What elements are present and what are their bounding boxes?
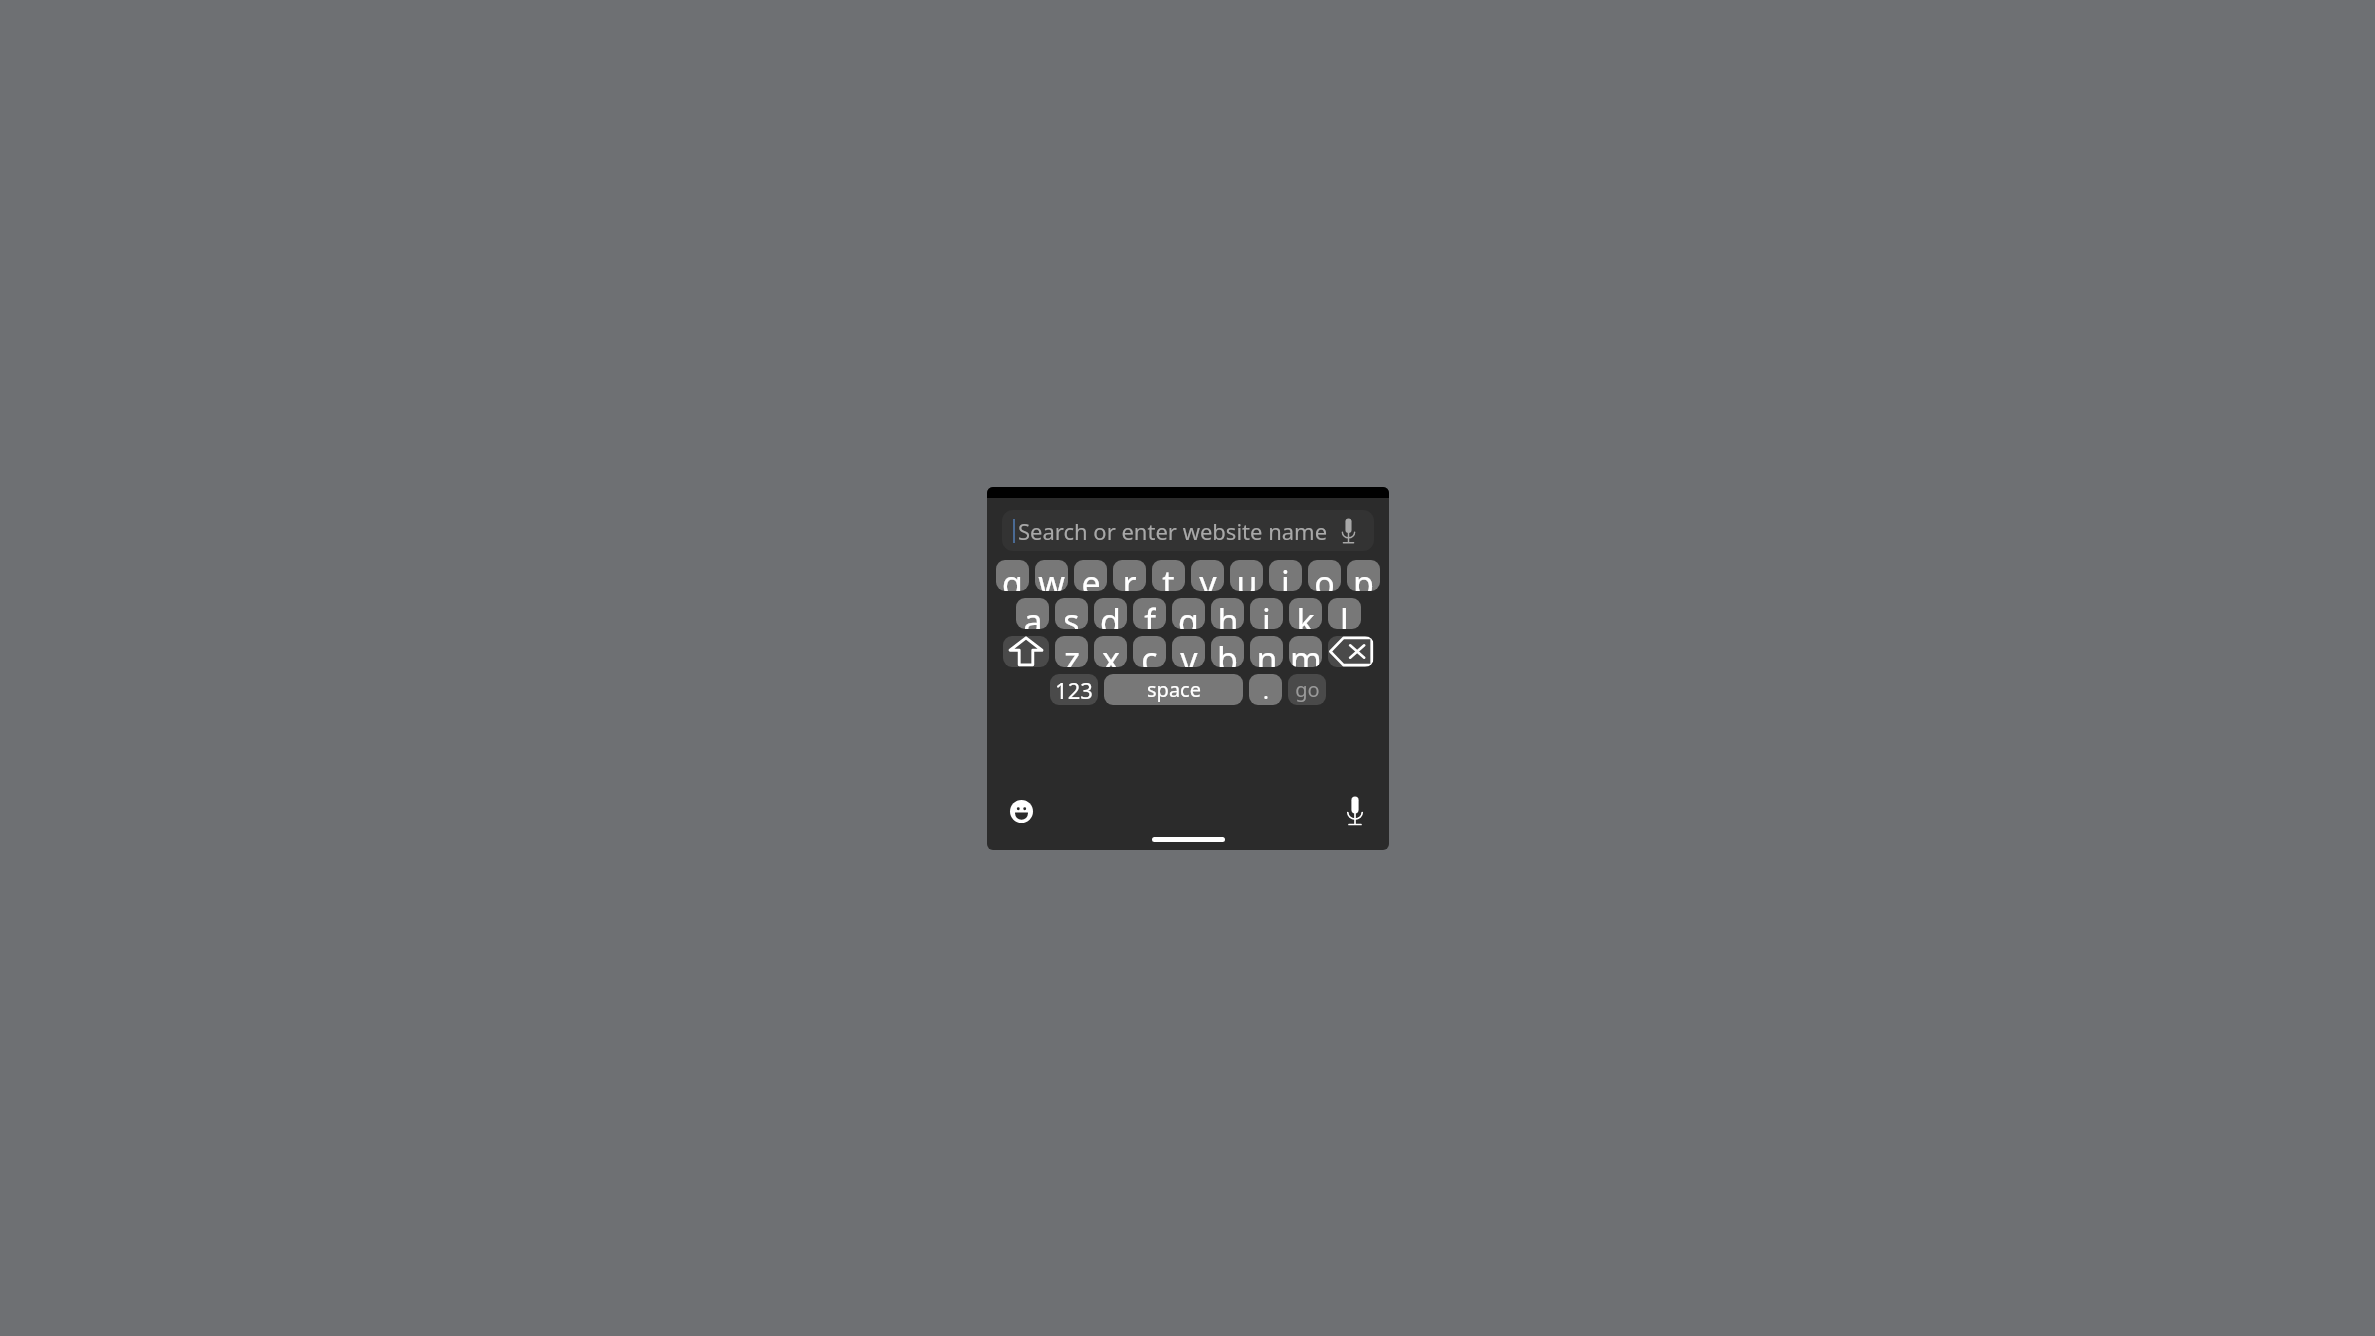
- staticText: l: [1340, 598, 1349, 629]
- button[interactable]: b: [1211, 636, 1244, 667]
- staticText: m: [1290, 636, 1322, 667]
- button[interactable]: x: [1094, 636, 1127, 667]
- button[interactable]: Search or enter website name: [1002, 510, 1374, 551]
- button[interactable]: r: [1113, 560, 1146, 591]
- staticText: e: [1081, 560, 1101, 591]
- button[interactable]: z: [1055, 636, 1088, 667]
- button[interactable]: Shift: [1003, 636, 1049, 667]
- button[interactable]: q: [996, 560, 1029, 591]
- staticText: q: [1002, 560, 1023, 591]
- button[interactable]: u: [1230, 560, 1263, 591]
- staticText: a: [1023, 598, 1043, 629]
- staticText: space: [1147, 676, 1201, 703]
- button[interactable]: space: [1104, 674, 1243, 705]
- staticText: i: [1281, 560, 1290, 591]
- button[interactable]: v: [1172, 636, 1205, 667]
- button[interactable]: Backspace: [1328, 636, 1374, 667]
- button[interactable]: k: [1289, 598, 1322, 629]
- button[interactable]: g: [1172, 598, 1205, 629]
- staticText: x: [1102, 636, 1120, 667]
- staticText: go: [1295, 676, 1320, 703]
- button[interactable]: d: [1094, 598, 1127, 629]
- button[interactable]: a: [1016, 598, 1049, 629]
- staticText: h: [1217, 598, 1239, 629]
- button[interactable]: y: [1191, 560, 1224, 591]
- button[interactable]: n: [1250, 636, 1283, 667]
- button[interactable]: 123: [1050, 674, 1098, 705]
- button[interactable]: l: [1328, 598, 1361, 629]
- button[interactable]: Dictation: [1335, 791, 1375, 831]
- button[interactable]: f: [1133, 598, 1166, 629]
- staticText: Search or enter website name: [1018, 516, 1333, 546]
- button[interactable]: e: [1074, 560, 1107, 591]
- staticText: j: [1262, 598, 1271, 629]
- staticText: .: [1263, 675, 1269, 705]
- button[interactable]: Emoji: [1001, 791, 1041, 831]
- button[interactable]: h: [1211, 598, 1244, 629]
- button[interactable]: Voice search: [1333, 516, 1363, 546]
- staticText: r: [1122, 560, 1137, 591]
- staticText: v: [1180, 636, 1198, 667]
- staticText: c: [1141, 636, 1158, 667]
- button[interactable]: go: [1288, 674, 1326, 705]
- button[interactable]: m: [1289, 636, 1322, 667]
- button[interactable]: .: [1249, 674, 1282, 705]
- button[interactable]: p: [1347, 560, 1380, 591]
- button[interactable]: j: [1250, 598, 1283, 629]
- button[interactable]: s: [1055, 598, 1088, 629]
- staticText: y: [1199, 560, 1217, 591]
- staticText: k: [1296, 598, 1315, 629]
- button[interactable]: c: [1133, 636, 1166, 667]
- button[interactable]: i: [1269, 560, 1302, 591]
- staticText: t: [1162, 560, 1175, 591]
- staticText: d: [1100, 598, 1121, 629]
- button[interactable]: t: [1152, 560, 1185, 591]
- staticText: f: [1144, 598, 1156, 629]
- staticText: z: [1064, 636, 1080, 667]
- staticText: w: [1038, 560, 1065, 591]
- staticText: u: [1236, 560, 1258, 591]
- staticText: s: [1063, 598, 1080, 629]
- staticText: g: [1178, 598, 1199, 629]
- staticText: p: [1353, 560, 1374, 591]
- staticText: n: [1256, 636, 1278, 667]
- button[interactable]: w: [1035, 560, 1068, 591]
- staticText: 123: [1055, 675, 1093, 705]
- button[interactable]: o: [1308, 560, 1341, 591]
- staticText: o: [1314, 560, 1335, 591]
- staticText: b: [1217, 636, 1238, 667]
